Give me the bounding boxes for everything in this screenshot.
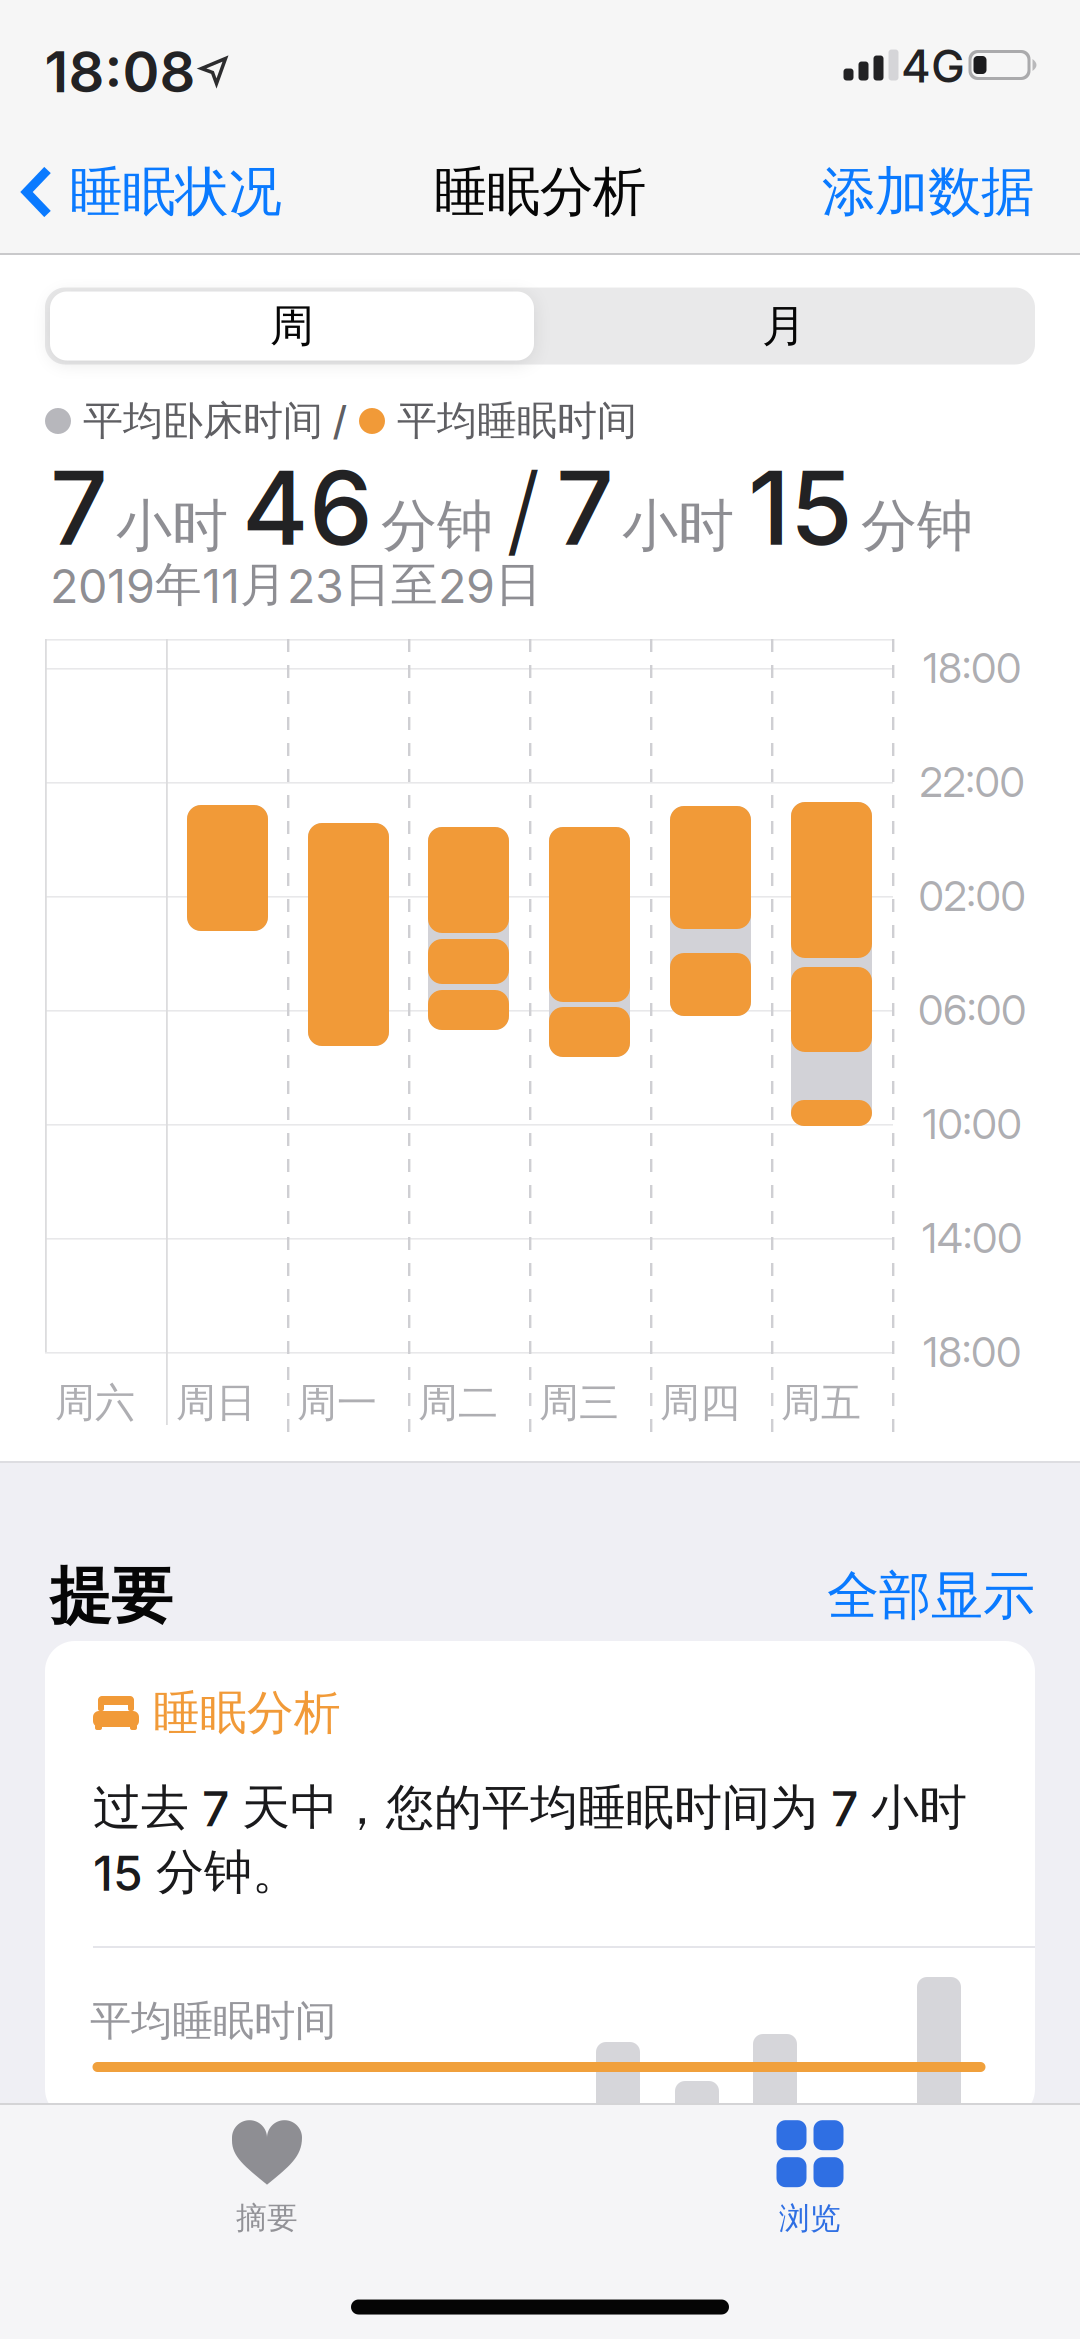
staticText: 06:00 — [918, 985, 1026, 1035]
staticText: 平均卧床时间 — [83, 396, 323, 446]
staticText: 平均睡眠时间 — [90, 1995, 336, 2047]
button[interactable]: 周 — [50, 291, 534, 360]
staticText: 46 — [242, 447, 373, 569]
staticText: 15 — [748, 447, 853, 569]
staticText: 周二 — [418, 1378, 498, 1428]
staticText: 22:00 — [919, 757, 1024, 807]
button[interactable]: 浏览 — [776, 2120, 843, 2238]
staticText: 提要 — [50, 1557, 172, 1635]
staticText: 过去 7 天中，您的平均睡眠时间为 7 小时 15 分钟。 — [93, 1777, 967, 1902]
staticText: 14:00 — [922, 1213, 1022, 1263]
staticText: 周四 — [660, 1378, 740, 1428]
staticText: 18:00 — [923, 643, 1021, 693]
staticText: 摘要 — [236, 2199, 298, 2237]
button[interactable]: 月 — [584, 291, 984, 360]
staticText: 10:00 — [922, 1099, 1021, 1149]
staticText: / — [333, 397, 347, 445]
staticText: 分钟 — [381, 491, 493, 561]
staticText: 睡眠状况 — [69, 158, 281, 226]
button[interactable]: 睡眠分析 — [45, 1641, 1035, 2103]
button[interactable]: 睡眠状况 — [22, 158, 281, 226]
staticText: 周一 — [297, 1378, 377, 1428]
staticText: 月 — [762, 298, 806, 354]
staticText: 4G — [901, 39, 965, 93]
staticText: 2019年11月23日至29日 — [50, 556, 542, 614]
staticText: 7 — [556, 447, 614, 569]
staticText: 周三 — [539, 1378, 619, 1428]
staticText: / — [506, 449, 540, 569]
staticText: 全部显示 — [827, 1563, 1035, 1629]
staticText: 周日 — [176, 1378, 256, 1428]
staticText: 7 — [50, 447, 108, 569]
staticText: 添加数据 — [822, 158, 1034, 226]
button[interactable]: 添加数据 — [822, 158, 1034, 226]
staticText: 18:08 — [44, 38, 195, 106]
button[interactable]: 全部显示 — [827, 1563, 1035, 1629]
staticText: 小时 — [116, 491, 228, 561]
staticText: 分钟 — [861, 491, 973, 561]
staticText: 睡眠分析 — [153, 1684, 341, 1742]
staticText: 睡眠分析 — [434, 158, 646, 226]
staticText: 平均睡眠时间 — [397, 396, 637, 446]
staticText: 02:00 — [918, 871, 1025, 921]
button[interactable]: 摘要 — [231, 2119, 303, 2237]
staticText: 周五 — [781, 1378, 861, 1428]
staticText: 周 — [270, 298, 314, 354]
staticText: 浏览 — [779, 2199, 841, 2238]
staticText: 18:00 — [923, 1327, 1021, 1377]
staticText: 周六 — [55, 1378, 135, 1428]
staticText: 小时 — [622, 491, 734, 561]
